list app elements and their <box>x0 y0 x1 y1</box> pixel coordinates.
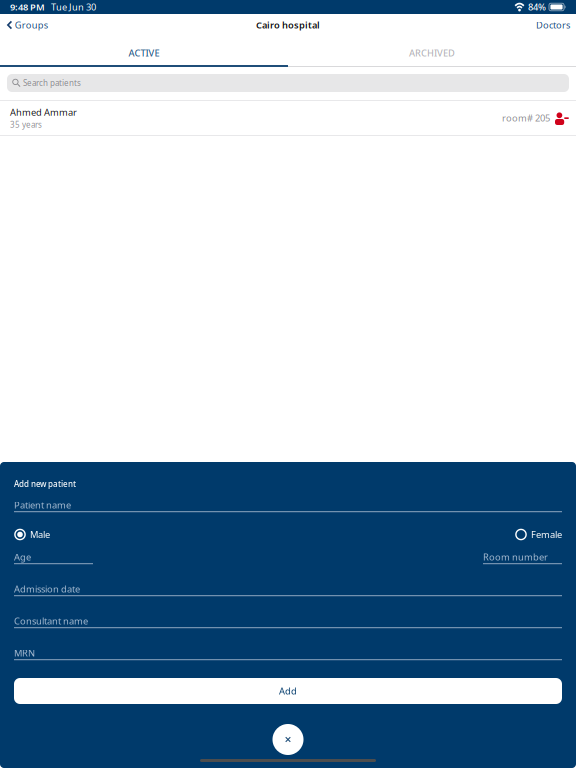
button[interactable]: ARCHIVED <box>288 36 576 67</box>
staticText: 9:48 PM <box>10 1 45 13</box>
staticText: Add new patient <box>14 479 76 489</box>
staticText: 35 years <box>10 119 42 130</box>
staticText: Add <box>279 685 297 697</box>
staticText: Admission date <box>14 583 80 595</box>
staticText: Room number <box>483 551 548 563</box>
staticText: MRN <box>14 647 35 659</box>
staticText: Male <box>30 528 50 541</box>
button[interactable]: Groups <box>0 14 56 36</box>
staticText: Search patients <box>23 78 81 88</box>
staticText: Groups <box>15 19 48 31</box>
button[interactable]: Female <box>515 528 562 541</box>
staticText: Consultant name <box>14 615 88 627</box>
staticText: Cairo hospital <box>256 19 320 31</box>
button[interactable]: ACTIVE <box>0 36 288 67</box>
staticText: Doctors <box>536 19 570 31</box>
button[interactable]: Doctors <box>526 14 576 36</box>
button[interactable]: Male <box>14 528 50 541</box>
staticText: Female <box>531 528 562 541</box>
staticText: Age <box>14 551 31 563</box>
staticText: 84% <box>528 1 546 13</box>
staticText: ACTIVE <box>128 47 159 59</box>
staticText: Patient name <box>14 499 71 511</box>
button[interactable]: Close <box>272 724 303 755</box>
staticText: Ahmed Ammar <box>10 106 77 118</box>
button[interactable]: Ahmed Ammar <box>0 101 576 135</box>
staticText: ARCHIVED <box>409 47 455 59</box>
staticText: Tue Jun 30 <box>51 1 96 13</box>
button[interactable]: Add <box>14 678 562 704</box>
staticText: room# 205 <box>502 112 550 124</box>
